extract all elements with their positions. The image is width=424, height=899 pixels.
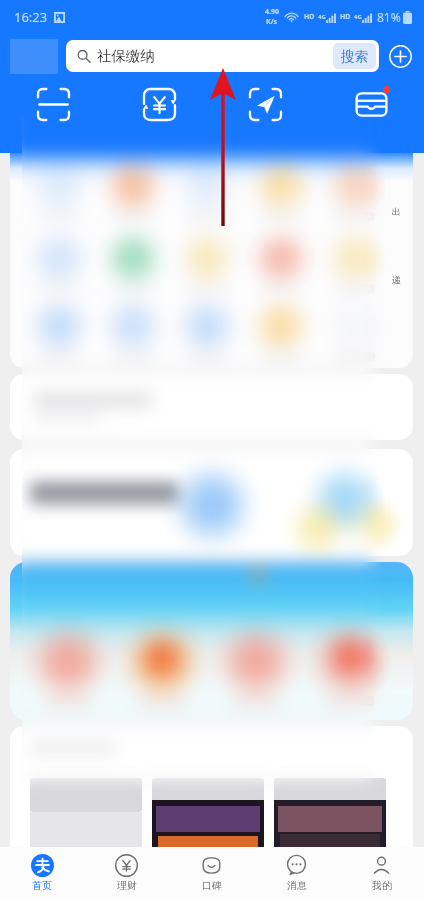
staticText: 4G (318, 13, 326, 21)
staticText: 搜索 (341, 48, 368, 65)
button[interactable]: 社保缴纳 (66, 40, 379, 72)
staticText: 我的 (372, 879, 392, 892)
staticText: 出 (392, 206, 401, 217)
button[interactable]: 口碑 (169, 847, 254, 899)
staticText: 4G (354, 13, 362, 21)
staticText: HD (304, 12, 315, 22)
button[interactable]: 理财 (84, 847, 169, 899)
staticText: 理财 (117, 879, 137, 892)
staticText: 消息 (287, 879, 307, 892)
button[interactable]: Pay (106, 82, 212, 126)
button[interactable]: Transfer (212, 82, 318, 126)
staticText: 81% (377, 9, 401, 25)
button[interactable]: 首页 (0, 847, 84, 899)
staticText: 口碑 (202, 879, 222, 892)
button[interactable]: 搜索 (333, 43, 376, 69)
staticText: 4.90 (265, 7, 279, 17)
staticText: K/s (266, 17, 278, 27)
button[interactable]: Add (389, 45, 412, 68)
button[interactable]: Scan (0, 82, 106, 126)
staticText: 社保缴纳 (97, 47, 155, 65)
button[interactable]: 消息 (254, 847, 339, 899)
staticText: 16:23 (14, 8, 48, 26)
button[interactable]: Wallet (318, 82, 424, 126)
staticText: 递 (392, 274, 401, 285)
staticText: HD (340, 12, 351, 22)
staticText: 首页 (32, 879, 52, 892)
button[interactable]: 我的 (339, 847, 424, 899)
